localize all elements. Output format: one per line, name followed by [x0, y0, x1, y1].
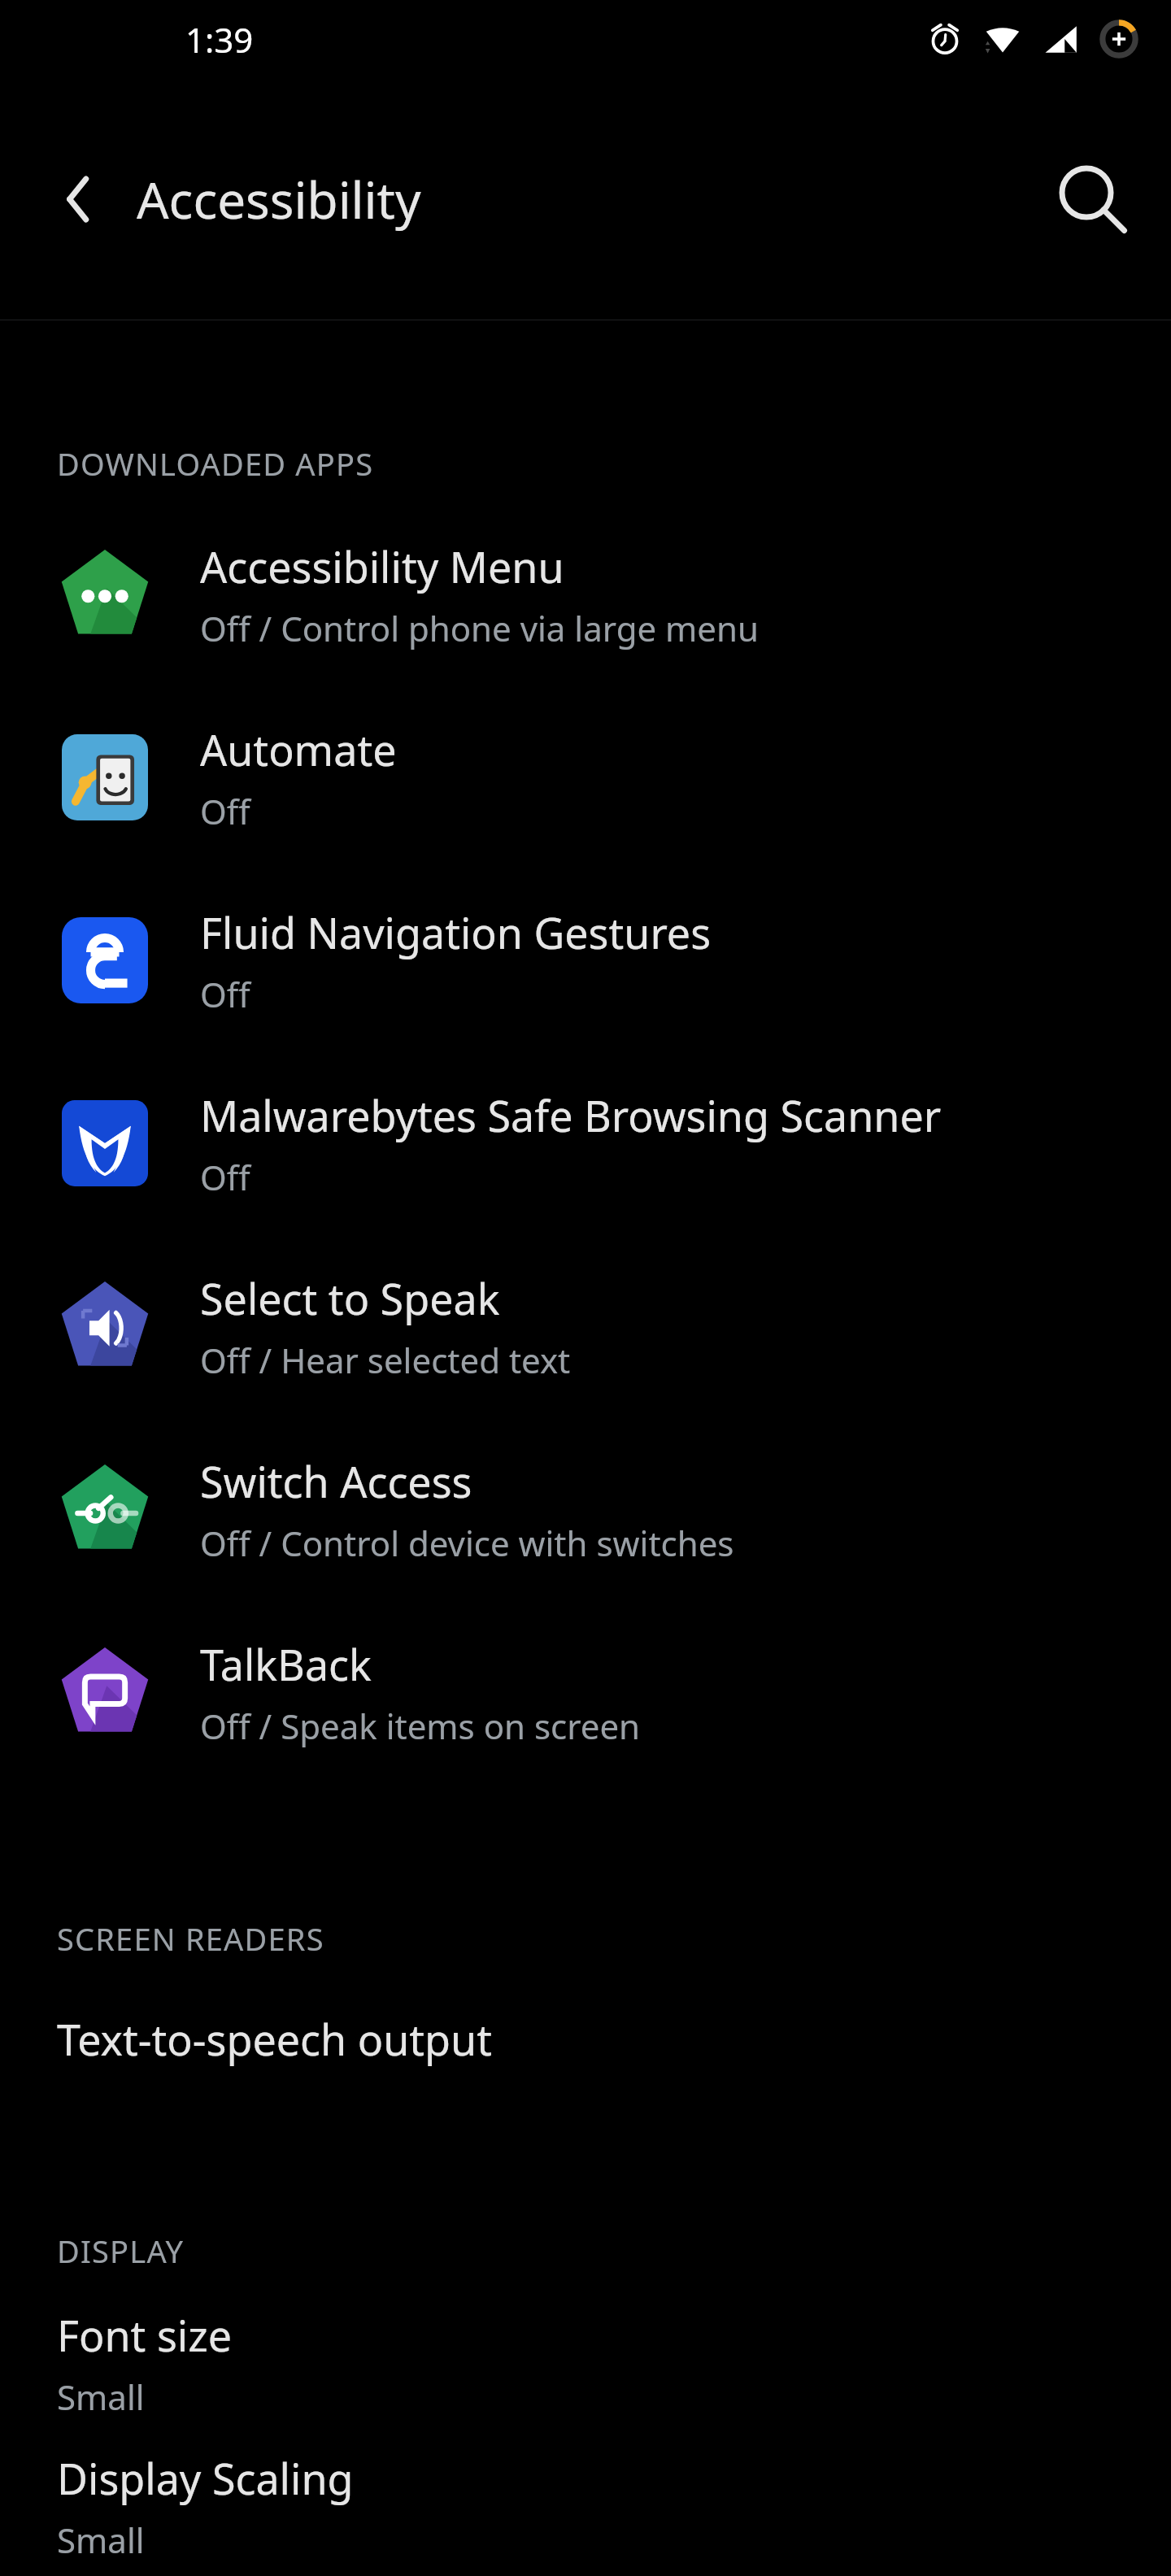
button[interactable]: Fluid Navigation Gestures	[0, 868, 1171, 1051]
staticText: Accessibility	[137, 165, 421, 233]
button[interactable]: Display Scaling	[0, 2436, 1171, 2576]
button[interactable]: Malwarebytes Safe Browsing Scanner	[0, 1051, 1171, 1234]
staticText: Off	[200, 788, 250, 834]
staticText: Automate	[200, 720, 397, 778]
button[interactable]: Accessibility Menu	[0, 503, 1171, 685]
staticText: Off / Speak items on screen	[200, 1703, 641, 1749]
staticText: DISPLAY	[57, 2230, 185, 2272]
staticText: Font size	[57, 2306, 232, 2364]
button[interactable]: Back	[42, 160, 120, 238]
button[interactable]: Automate	[0, 685, 1171, 868]
staticText: 1:39	[185, 16, 254, 63]
staticText: Malwarebytes Safe Browsing Scanner	[200, 1086, 942, 1144]
staticText: Off / Control device with switches	[200, 1520, 734, 1566]
button[interactable]: Text-to-speech output	[0, 1978, 1171, 2100]
staticText: Text-to-speech output	[57, 2010, 492, 2068]
staticText: Off / Control phone via large menu	[200, 605, 759, 651]
staticText: TalkBack	[200, 1635, 372, 1693]
button[interactable]: Switch Access	[0, 1417, 1171, 1600]
staticText: Off	[200, 1154, 250, 1200]
staticText: Small	[57, 2374, 145, 2420]
staticText: Accessibility Menu	[200, 537, 564, 595]
button[interactable]: TalkBack	[0, 1600, 1171, 1783]
button[interactable]: Search	[1051, 159, 1132, 240]
staticText: Select to Speak	[200, 1269, 500, 1327]
staticText: Off / Hear selected text	[200, 1337, 571, 1383]
staticText: DOWNLOADED APPS	[57, 442, 374, 485]
staticText: SCREEN READERS	[57, 1917, 324, 1960]
button[interactable]: Select to Speak	[0, 1234, 1171, 1417]
staticText: Display Scaling	[57, 2449, 354, 2507]
staticText: Fluid Navigation Gestures	[200, 903, 712, 961]
staticText: Off	[200, 971, 250, 1017]
button[interactable]: Font size	[0, 2290, 1171, 2436]
staticText: Small	[57, 2517, 145, 2563]
staticText: Switch Access	[200, 1452, 472, 1510]
